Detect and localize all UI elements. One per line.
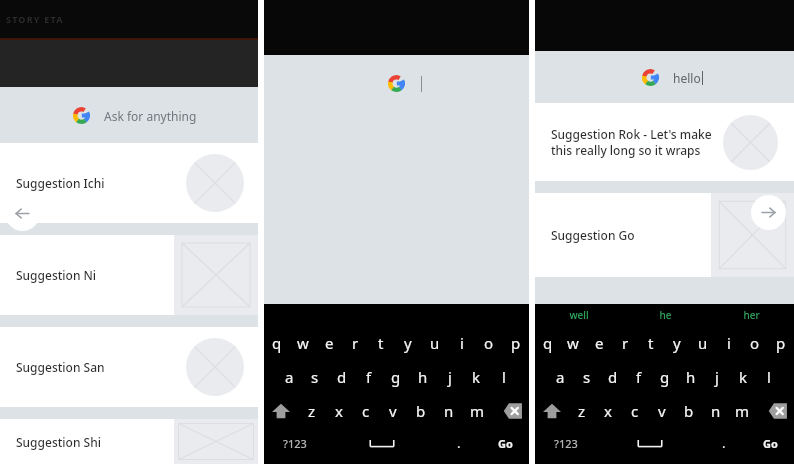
staticText: Suggestion Shi [16,434,101,450]
button[interactable]: c [352,394,379,428]
button[interactable]: he [622,304,708,326]
button[interactable]: o [742,326,768,360]
staticText: Suggestion Go [551,227,635,243]
button[interactable]: g [382,360,409,394]
button[interactable]: d [600,360,626,394]
button[interactable]: Space [597,428,702,458]
staticText: z [308,401,316,421]
staticText: y [673,333,681,353]
button[interactable]: u [421,326,448,360]
staticText: k [739,367,748,387]
button[interactable]: Shift [535,394,569,428]
button[interactable]: v [379,394,407,428]
button[interactable]: Suggestion Go [535,193,794,277]
button[interactable]: e [316,326,342,360]
staticText: . [722,434,726,452]
button[interactable]: y [394,326,421,360]
staticText: p [511,333,521,353]
button[interactable]: r [612,326,638,360]
button[interactable]: n [435,394,463,428]
button[interactable]: x [325,394,352,428]
button[interactable]: b [407,394,435,428]
button[interactable]: Suggestion Shi [0,419,258,464]
staticText: ?123 [554,436,578,451]
button[interactable]: i [448,326,475,360]
button[interactable]: s [302,360,328,394]
button[interactable]: o [475,326,502,360]
staticText: STORY ETA [6,13,64,25]
button[interactable]: m [729,394,756,428]
button[interactable]: Shift [264,394,298,428]
staticText: w [567,333,579,353]
staticText: q [272,333,282,353]
staticText: g [660,367,670,387]
button[interactable]: t [638,326,664,360]
staticText: Go [498,436,513,451]
button[interactable]: z [569,394,595,428]
button[interactable]: j [704,360,730,394]
button[interactable]: q [535,326,560,360]
button[interactable]: k [730,360,756,394]
button[interactable]: u [690,326,716,360]
button[interactable]: her [708,304,794,326]
button[interactable]: e [586,326,612,360]
button[interactable]: j [436,360,463,394]
button[interactable]: l [490,360,517,394]
button[interactable]: n [702,394,729,428]
button[interactable]: t [368,326,394,360]
button[interactable]: h [409,360,436,394]
button[interactable]: z [298,394,325,428]
staticText: hello [673,70,701,86]
staticText: l [767,367,771,387]
button[interactable]: g [652,360,678,394]
button[interactable]: l [756,360,782,394]
button[interactable]: Backspace [756,394,794,428]
button[interactable]: q [264,326,290,360]
button[interactable]: ?123 [535,428,597,458]
button[interactable]: Suggestion Ni [0,235,258,315]
staticText: p [776,333,786,353]
button[interactable]: i [716,326,742,360]
button[interactable]: b [675,394,702,428]
staticText: k [472,367,481,387]
button[interactable]: Go [746,428,794,458]
button[interactable]: w [290,326,316,360]
staticText: Suggestion Ichi [16,175,186,191]
button[interactable]: a [276,360,302,394]
button[interactable]: Backspace [491,394,529,428]
staticText: u [698,333,708,353]
button[interactable]: w [560,326,586,360]
staticText: s [583,367,591,387]
button[interactable]: Suggestion Ichi [0,143,258,223]
button[interactable]: Suggestion San [0,327,258,407]
button[interactable]: k [463,360,490,394]
button[interactable]: p [502,326,529,360]
button[interactable]: m [463,394,491,428]
button[interactable]: v [648,394,675,428]
staticText: l [502,367,506,387]
button[interactable]: h [678,360,704,394]
button[interactable]: s [574,360,600,394]
staticText: s [311,367,319,387]
button[interactable]: Back [5,196,40,231]
button[interactable]: r [342,326,368,360]
button[interactable]: f [626,360,652,394]
button[interactable]: p [768,326,794,360]
button[interactable]: ?123 [264,428,326,458]
button[interactable]: x [595,394,621,428]
button[interactable]: d [328,360,355,394]
staticText: r [352,333,359,353]
button[interactable]: Go [481,428,529,458]
staticText: t [378,333,384,353]
button[interactable]: Suggestion Rok - Let's make this really … [535,103,794,181]
button[interactable]: Forward [751,195,786,230]
button[interactable]: f [355,360,382,394]
button[interactable]: a [547,360,574,394]
button[interactable]: . [702,428,746,458]
button[interactable]: Space [326,428,437,458]
button[interactable]: c [621,394,648,428]
button[interactable]: y [664,326,690,360]
button[interactable]: well [535,304,622,326]
button[interactable]: . [437,428,481,458]
staticText: h [686,367,696,387]
